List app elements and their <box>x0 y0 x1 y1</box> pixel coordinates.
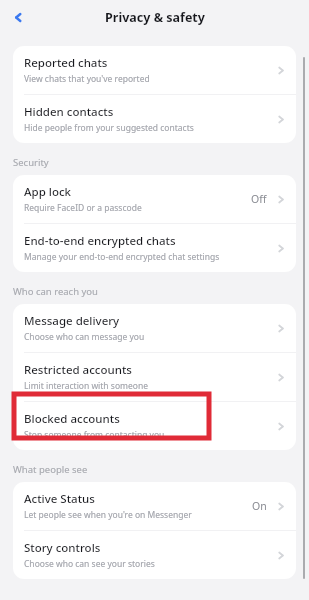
staticText: Active Status <box>24 491 95 507</box>
staticText: Manage your end-to-end encrypted chat se… <box>24 251 220 263</box>
staticText: On <box>252 499 267 513</box>
button[interactable]: Blocked accounts <box>13 402 296 450</box>
button[interactable]: Story controls <box>13 531 296 579</box>
staticText: Choose who can message you <box>24 331 145 343</box>
button[interactable]: Active Status <box>13 482 296 530</box>
staticText: Restricted accounts <box>24 362 132 378</box>
staticText: Off <box>251 192 267 206</box>
staticText: Stop someone from contacting you <box>24 429 165 441</box>
button[interactable]: End-to-end encrypted chats <box>13 224 296 272</box>
button[interactable]: Back <box>6 5 30 29</box>
staticText: Limit interaction with someone <box>24 380 148 392</box>
staticText: Reported chats <box>24 55 108 71</box>
button[interactable]: Reported chats <box>13 46 296 94</box>
staticText: Hide people from your suggested contacts <box>24 122 194 134</box>
staticText: Story controls <box>24 540 101 556</box>
staticText: View chats that you've reported <box>24 73 150 85</box>
staticText: Message delivery <box>24 313 120 329</box>
staticText: Who can reach you <box>13 285 98 298</box>
button[interactable]: App lock <box>13 175 296 223</box>
staticText: Require FaceID or a passcode <box>24 202 142 214</box>
staticText: Let people see when you're on Messenger <box>24 509 192 521</box>
button[interactable]: Message delivery <box>13 304 296 352</box>
staticText: Choose who can see your stories <box>24 558 155 570</box>
staticText: Blocked accounts <box>24 411 120 427</box>
staticText: End-to-end encrypted chats <box>24 233 176 249</box>
staticText: Privacy & safety <box>105 9 205 26</box>
button[interactable]: Restricted accounts <box>13 353 296 401</box>
staticText: Hidden contacts <box>24 104 114 120</box>
staticText: App lock <box>24 184 71 200</box>
staticText: Security <box>13 156 49 169</box>
staticText: What people see <box>13 463 88 476</box>
button[interactable]: Hidden contacts <box>13 95 296 143</box>
